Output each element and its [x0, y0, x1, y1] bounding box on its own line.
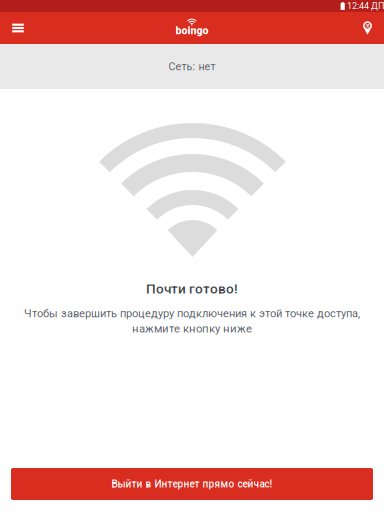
staticText: Сеть: нет [168, 60, 215, 73]
button[interactable]: Find hotspots [351, 12, 384, 44]
button[interactable]: Menu [0, 12, 36, 44]
button[interactable]: Выйти в Интернет прямо сейчас! [11, 468, 373, 500]
staticText: нажмите кнопку ниже [132, 322, 252, 335]
staticText: boingo [175, 24, 208, 37]
staticText: Выйти в Интернет прямо сейчас! [111, 478, 272, 490]
staticText: Чтобы завершить процедуру подключения к … [24, 307, 360, 320]
staticText: Почти готово! [146, 281, 238, 297]
staticText: 12:44 ДП [347, 1, 384, 11]
